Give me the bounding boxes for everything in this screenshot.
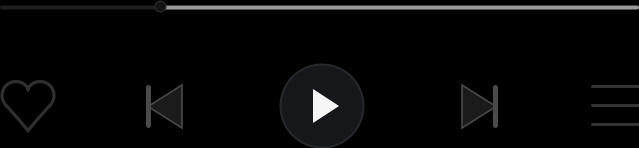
button[interactable]: Next track: [449, 76, 509, 136]
button[interactable]: Previous track: [134, 76, 194, 136]
button[interactable]: Play: [279, 63, 365, 148]
button[interactable]: Up next: [591, 74, 639, 136]
button[interactable]: Favorite: [0, 75, 61, 137]
